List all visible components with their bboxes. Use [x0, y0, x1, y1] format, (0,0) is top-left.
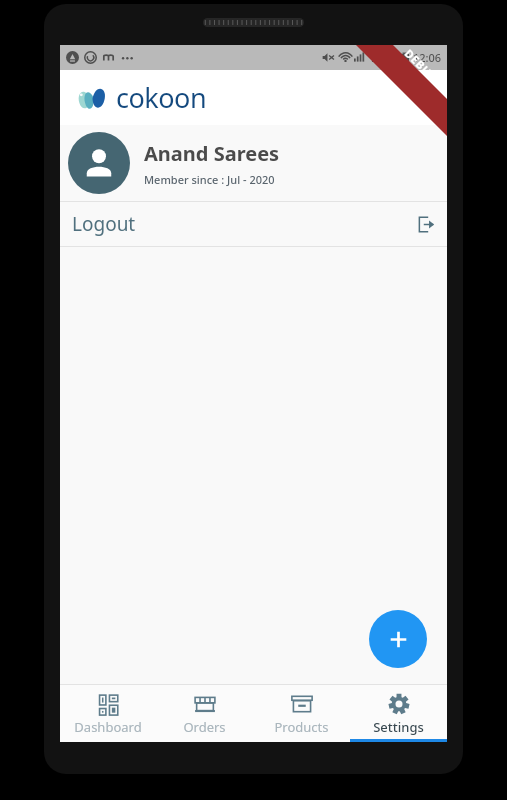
staticText: cokoon: [116, 79, 207, 116]
button[interactable]: Dashboard: [60, 685, 156, 742]
staticText: Settings: [373, 718, 424, 736]
button[interactable]: Products: [253, 685, 350, 742]
button[interactable]: Settings: [350, 685, 447, 742]
staticText: Member since : Jul - 2020: [144, 172, 275, 187]
staticText: 12:06: [413, 50, 442, 65]
button[interactable]: Logout: [60, 202, 447, 246]
button[interactable]: Add: [369, 610, 427, 668]
staticText: 100%: [369, 50, 398, 65]
button[interactable]: Orders: [156, 685, 253, 742]
staticText: Anand Sarees: [144, 140, 280, 167]
staticText: Dashboard: [74, 718, 142, 736]
staticText: Orders: [183, 718, 226, 736]
staticText: Logout: [72, 211, 136, 237]
button[interactable]: Anand Sarees: [60, 125, 447, 201]
staticText: Products: [274, 718, 329, 736]
staticText: DEBUG: [402, 46, 441, 85]
other: Logout: [418, 216, 435, 233]
